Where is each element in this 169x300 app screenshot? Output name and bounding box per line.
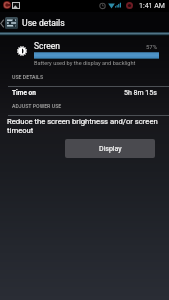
button[interactable]: Display xyxy=(65,139,155,158)
staticText: Time on xyxy=(12,89,36,97)
staticText: 1:41 AM xyxy=(139,2,165,10)
staticText: 5h 8m 15s xyxy=(124,89,157,97)
staticText: Use details xyxy=(22,18,65,28)
button[interactable]: Navigate up xyxy=(0,12,21,34)
staticText: 57% xyxy=(146,43,158,50)
staticText: Battery used by the display and backligh… xyxy=(34,60,136,67)
staticText: USE DETAILS xyxy=(12,74,44,80)
staticText: ADJUST POWER USE xyxy=(12,103,62,109)
staticText: Reduce the screen brightness and/or scre… xyxy=(7,117,163,135)
staticText: Screen xyxy=(34,41,61,51)
staticText: Display xyxy=(99,145,122,153)
